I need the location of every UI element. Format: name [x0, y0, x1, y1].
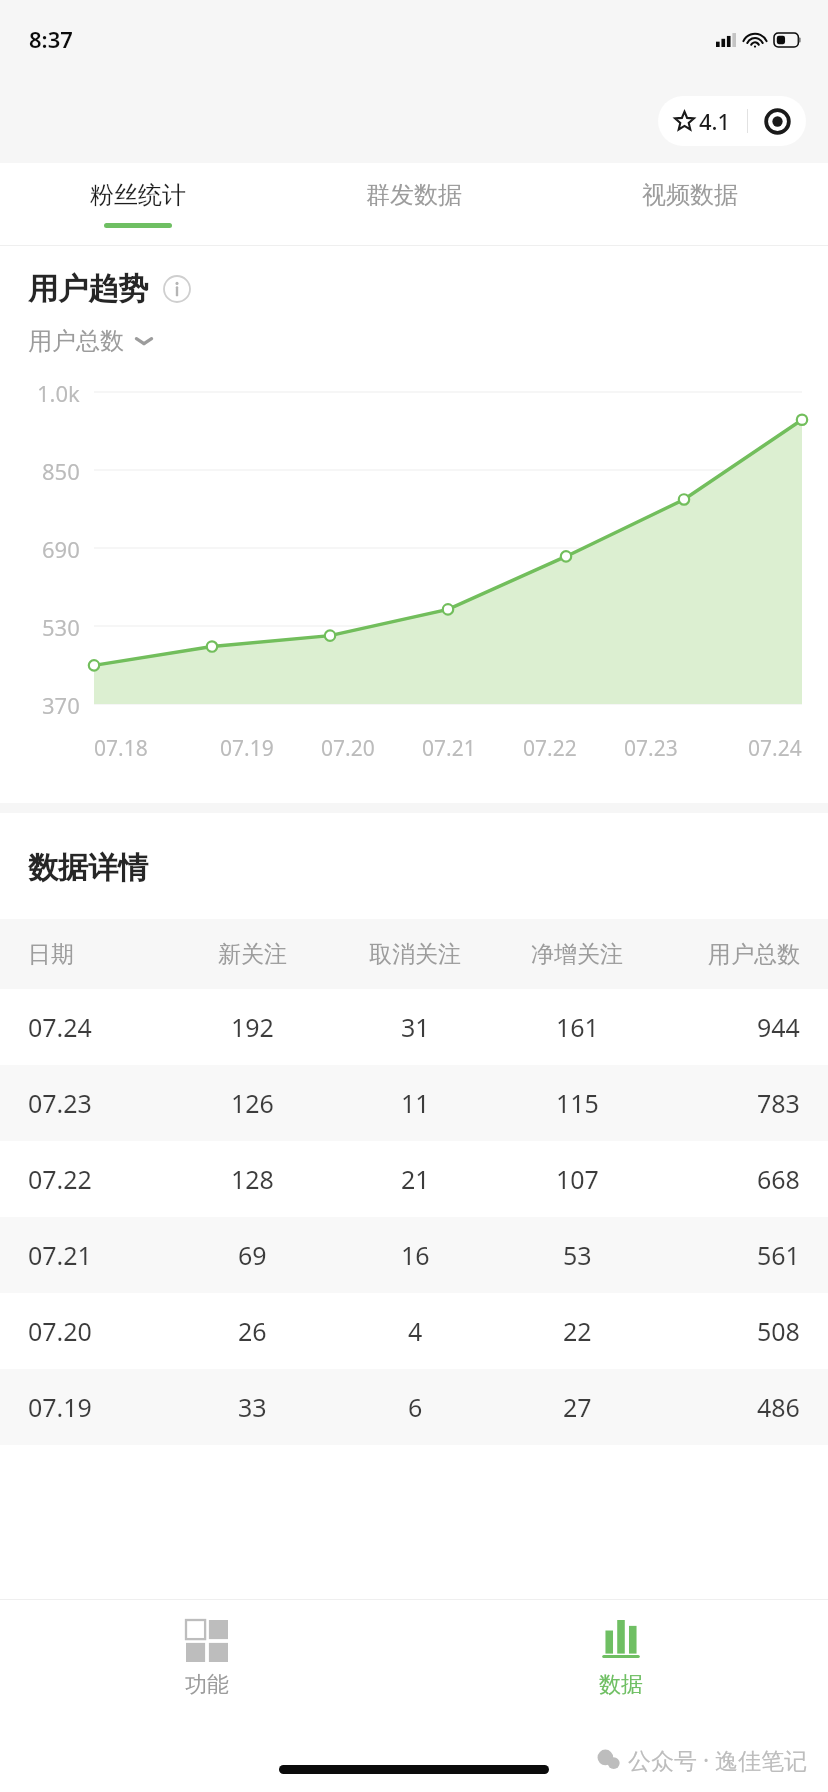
staticText: 群发数据: [366, 180, 462, 210]
button[interactable]: 07.19: [0, 1369, 828, 1445]
staticText: 128: [231, 1162, 274, 1196]
staticText: 数据详情: [28, 849, 148, 887]
staticText: 11: [401, 1086, 430, 1120]
staticText: 净增关注: [531, 940, 623, 969]
staticText: 27: [563, 1390, 592, 1424]
staticText: 115: [556, 1086, 599, 1120]
staticText: 561: [757, 1238, 800, 1272]
staticText: 508: [757, 1314, 800, 1348]
button[interactable]: 粉丝统计: [0, 163, 276, 245]
button[interactable]: 07.20: [0, 1293, 828, 1369]
staticText: 31: [401, 1010, 430, 1044]
staticText: 功能: [185, 1671, 229, 1699]
staticText: 22: [563, 1314, 592, 1348]
button[interactable]: 用户总数: [28, 326, 154, 356]
staticText: 1.0k: [37, 378, 80, 406]
staticText: 126: [231, 1086, 274, 1120]
staticText: 日期: [28, 940, 74, 969]
staticText: 07.22: [28, 1162, 92, 1196]
staticText: 6: [408, 1390, 423, 1424]
staticText: 944: [757, 1010, 800, 1044]
staticText: 370: [42, 690, 80, 718]
button[interactable]: Info: [162, 274, 192, 304]
staticText: 4.1: [699, 106, 731, 136]
staticText: 公众号 · 逸佳笔记: [628, 1744, 808, 1775]
staticText: 用户总数: [28, 326, 124, 356]
staticText: 07.24: [748, 734, 802, 763]
staticText: 21: [401, 1162, 430, 1196]
staticText: 07.19: [28, 1390, 92, 1424]
staticText: 取消关注: [369, 940, 461, 969]
staticText: 新关注: [218, 940, 287, 969]
staticText: 16: [401, 1238, 430, 1272]
staticText: 粉丝统计: [90, 180, 186, 210]
button[interactable]: 07.22: [0, 1141, 828, 1217]
staticText: 用户总数: [708, 940, 800, 969]
staticText: 668: [757, 1162, 800, 1196]
button[interactable]: 群发数据: [276, 163, 552, 245]
staticText: 07.23: [624, 734, 678, 763]
other: Rating: [674, 111, 695, 132]
button[interactable]: More: [748, 96, 806, 146]
staticText: 107: [556, 1162, 599, 1196]
button[interactable]: 07.23: [0, 1065, 828, 1141]
staticText: 53: [563, 1238, 592, 1272]
staticText: 69: [238, 1238, 267, 1272]
staticText: 数据: [599, 1671, 643, 1699]
staticText: 33: [238, 1390, 267, 1424]
staticText: 690: [42, 534, 80, 562]
staticText: 4: [408, 1314, 423, 1348]
staticText: 07.18: [94, 734, 148, 763]
staticText: 07.20: [321, 734, 375, 763]
button[interactable]: 07.24: [0, 989, 828, 1065]
button[interactable]: 功能: [0, 1600, 414, 1718]
button[interactable]: Rating: [658, 96, 747, 146]
staticText: 530: [42, 612, 80, 640]
staticText: 161: [556, 1010, 599, 1044]
staticText: 783: [757, 1086, 800, 1120]
button[interactable]: 视频数据: [552, 163, 828, 245]
staticText: 用户趋势: [28, 270, 148, 308]
staticText: 8:37: [29, 24, 73, 54]
button[interactable]: 07.21: [0, 1217, 828, 1293]
staticText: 07.21: [422, 734, 476, 763]
staticText: 07.23: [28, 1086, 92, 1120]
staticText: 07.24: [28, 1010, 92, 1044]
staticText: 视频数据: [642, 180, 738, 210]
staticText: 486: [757, 1390, 800, 1424]
staticText: 07.21: [28, 1238, 92, 1272]
staticText: 07.22: [523, 734, 577, 763]
staticText: 192: [231, 1010, 274, 1044]
staticText: 07.19: [220, 734, 274, 763]
staticText: 07.20: [28, 1314, 92, 1348]
button[interactable]: 数据: [414, 1600, 828, 1718]
staticText: 850: [42, 456, 80, 484]
staticText: 26: [238, 1314, 267, 1348]
